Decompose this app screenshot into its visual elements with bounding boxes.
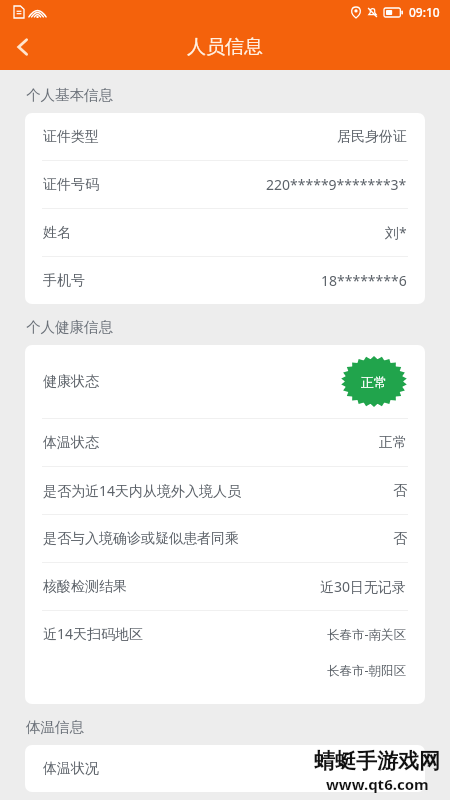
button[interactable]: 证件类型 [25, 113, 425, 160]
staticText: 体温状态 [43, 434, 99, 452]
staticText: 是否为近14天内从境外入境人员 [43, 481, 242, 500]
staticText: 健康状态 [43, 373, 99, 391]
staticText: 近30日无记录 [320, 577, 407, 596]
staticText: 长春市-南关区 [327, 626, 407, 643]
button[interactable]: 证件号码 [25, 161, 425, 208]
staticText: 个人健康信息 [26, 318, 113, 336]
staticText: 体温状况 [43, 760, 99, 778]
staticText: 居民身份证 [337, 128, 407, 146]
staticText: 否 [393, 530, 407, 548]
staticText: 核酸检测结果 [43, 578, 127, 596]
button[interactable]: 姓名 [25, 209, 425, 256]
staticText: 个人基本信息 [26, 86, 113, 104]
staticText: 证件类型 [43, 128, 99, 146]
staticText: 证件号码 [43, 176, 99, 194]
button[interactable]: Back [0, 24, 46, 70]
button[interactable]: 手机号 [25, 257, 425, 304]
staticText: 正常 [361, 374, 387, 390]
staticText: 18********6 [321, 271, 407, 290]
staticText: 手机号 [43, 272, 85, 290]
staticText: 体温信息 [26, 718, 84, 736]
staticText: 人员信息 [187, 35, 263, 59]
staticText: 蜻蜓手游戏网 [314, 748, 440, 774]
staticText: www.qt6.com [326, 774, 429, 794]
staticText: 长春市-朝阳区 [327, 662, 407, 679]
button[interactable]: 近14天扫码地区 [25, 611, 425, 704]
staticText: 09:10 [409, 4, 440, 20]
staticText: 近14天扫码地区 [43, 624, 144, 643]
staticText: 220*****9*******3* [266, 175, 407, 194]
button[interactable]: 是否为近14天内从境外入境人员 [25, 467, 425, 514]
button[interactable]: 是否与入境确诊或疑似患者同乘 [25, 515, 425, 562]
staticText: 正常 [379, 434, 407, 452]
staticText: 刘* [385, 223, 407, 242]
button[interactable]: 健康状态 [25, 345, 425, 418]
button[interactable]: 核酸检测结果 [25, 563, 425, 610]
staticText: 否 [393, 482, 407, 500]
staticText: 姓名 [43, 224, 71, 242]
button[interactable]: 体温状态 [25, 419, 425, 466]
staticText: 是否与入境确诊或疑似患者同乘 [43, 530, 239, 548]
button[interactable]: 体温状况 [25, 745, 425, 792]
